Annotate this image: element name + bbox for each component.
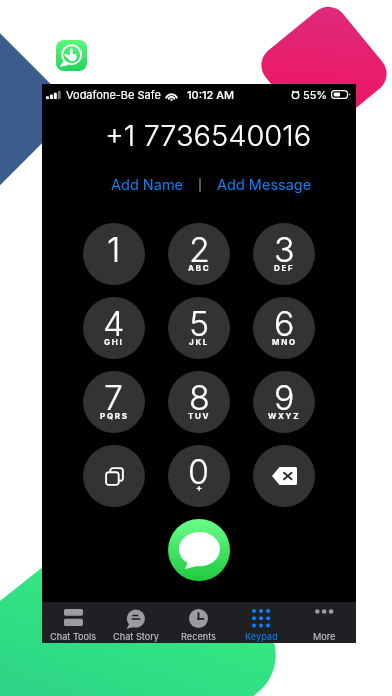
staticText: 7: [104, 377, 124, 418]
button[interactable]: 2: [168, 223, 230, 285]
button[interactable]: 5: [168, 297, 230, 359]
button[interactable]: Delete: [253, 445, 315, 507]
button[interactable]: Send message: [168, 519, 230, 581]
staticText: 9: [274, 377, 295, 418]
button[interactable]: Recents: [167, 602, 230, 643]
staticText: PQRS: [100, 411, 129, 421]
staticText: Add Name: [111, 176, 184, 194]
staticText: DEF: [274, 263, 295, 273]
staticText: Recents: [181, 631, 216, 642]
staticText: 5: [189, 303, 210, 344]
staticText: 4: [103, 303, 125, 344]
staticText: 55%: [303, 88, 328, 101]
button[interactable]: Add Message: [211, 172, 318, 198]
staticText: 1: [107, 229, 121, 270]
button[interactable]: 1: [83, 223, 145, 285]
button[interactable]: Keypad: [230, 602, 293, 643]
button[interactable]: 3: [253, 223, 315, 285]
staticText: MNO: [272, 337, 297, 347]
button[interactable]: Add Name: [105, 172, 190, 198]
button[interactable]: 4: [83, 297, 145, 359]
button[interactable]: 7: [83, 371, 145, 433]
button[interactable]: Chat Story: [104, 602, 167, 643]
staticText: 8: [189, 377, 210, 418]
staticText: TUV: [188, 411, 211, 421]
button[interactable]: Chat Tools: [42, 602, 104, 643]
button[interactable]: 8: [168, 371, 230, 433]
staticText: 10:12 AM: [187, 88, 235, 101]
staticText: Keypad: [245, 631, 278, 642]
button[interactable]: WhatsApp: [56, 40, 87, 71]
button[interactable]: More: [293, 602, 356, 643]
button[interactable]: 0: [168, 445, 230, 507]
button[interactable]: Paste: [83, 445, 145, 507]
staticText: +: [196, 482, 203, 493]
staticText: 3: [274, 229, 295, 270]
staticText: +1 7736540016: [51, 118, 365, 153]
staticText: Chat Story: [113, 631, 159, 642]
staticText: Vodafone-Be Safe: [66, 88, 161, 101]
staticText: Chat Tools: [50, 631, 97, 642]
staticText: 6: [274, 303, 295, 344]
button[interactable]: 9: [253, 371, 315, 433]
button[interactable]: 6: [253, 297, 315, 359]
staticText: Add Message: [217, 176, 312, 194]
staticText: ABC: [188, 263, 211, 273]
staticText: 0: [188, 451, 210, 492]
staticText: More: [313, 631, 336, 642]
staticText: 2: [189, 229, 210, 270]
staticText: WXYZ: [268, 411, 301, 421]
staticText: GHI: [104, 337, 124, 347]
staticText: JKL: [189, 337, 210, 347]
